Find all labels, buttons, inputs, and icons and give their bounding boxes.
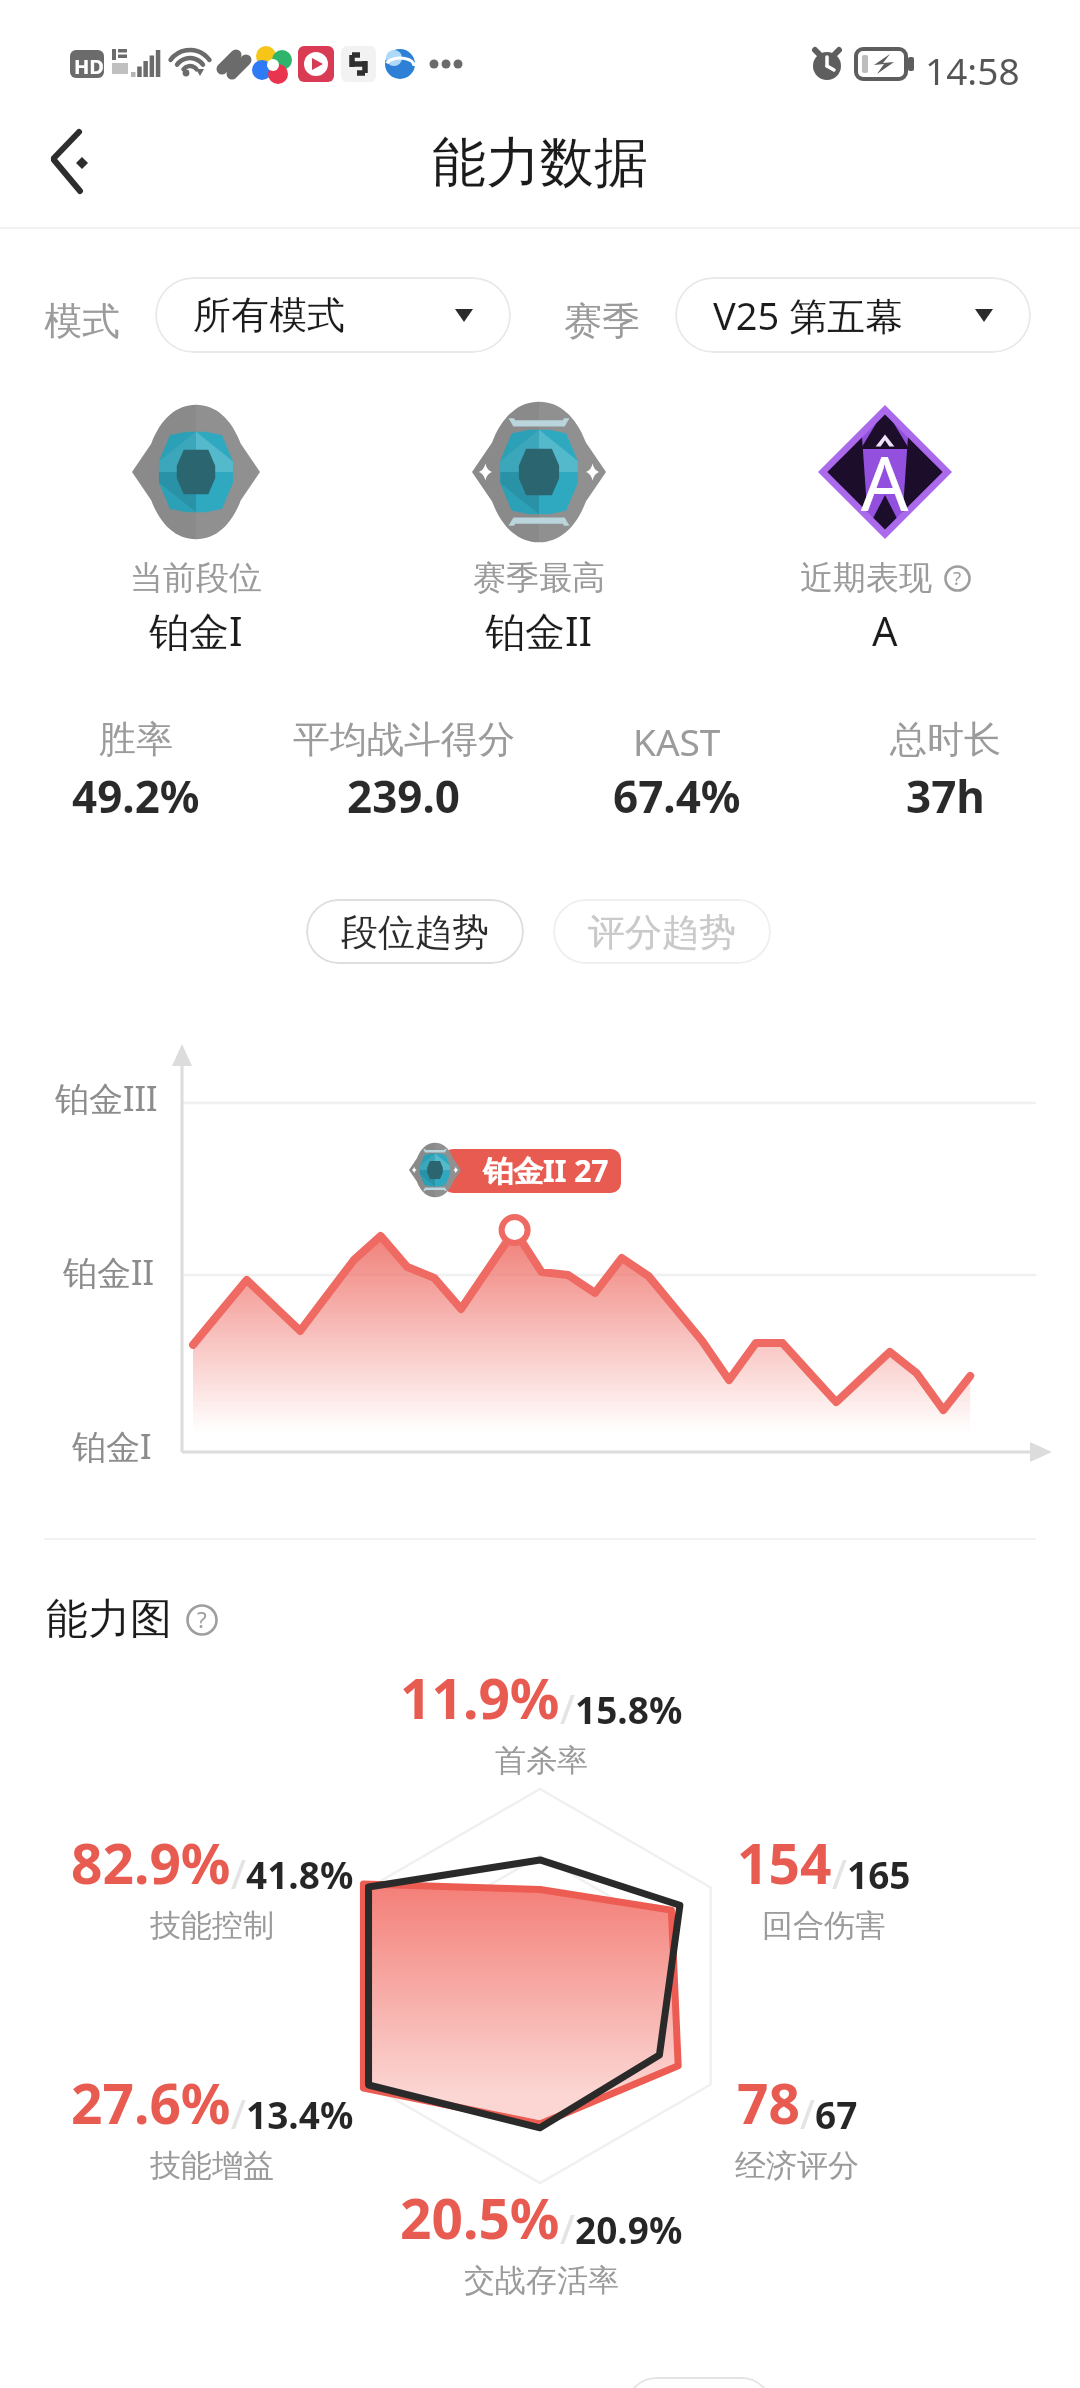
- staticText: 154: [737, 1825, 832, 1900]
- staticText: 铂金I: [72, 1423, 152, 1469]
- staticText: 165: [847, 1849, 911, 1899]
- staticText: 经济评分: [735, 2146, 859, 2185]
- staticText: /: [231, 1846, 246, 1900]
- staticText: A: [861, 432, 909, 533]
- staticText: 20.9%: [575, 2204, 683, 2254]
- staticText: 铂金II 27: [483, 1150, 609, 1191]
- staticText: 技能增益: [150, 2146, 274, 2185]
- staticText: 37h: [906, 766, 985, 826]
- staticText: 15.8%: [575, 1684, 683, 1734]
- button[interactable]: 段位趋势: [306, 899, 524, 964]
- staticText: 回合伤害: [762, 1906, 886, 1945]
- staticText: 平均战斗得分: [293, 716, 515, 763]
- staticText: 20.5%: [400, 2180, 560, 2255]
- staticText: V25 第五幕: [713, 289, 904, 341]
- staticText: 67.4%: [613, 766, 741, 826]
- staticText: 能力图: [46, 1593, 172, 1646]
- staticText: 铂金II: [63, 1249, 155, 1295]
- button[interactable]: Back: [20, 104, 130, 214]
- staticText: 模式: [44, 297, 120, 345]
- staticText: 总时长: [890, 716, 1001, 763]
- staticText: 铂金II: [485, 603, 593, 658]
- staticText: KAST: [633, 716, 721, 766]
- staticText: 当前段位: [130, 557, 262, 599]
- staticText: 11.9%: [400, 1660, 560, 1735]
- staticText: /: [800, 2086, 815, 2140]
- staticText: 赛季: [564, 297, 640, 345]
- staticText: A: [872, 603, 898, 657]
- staticText: ?: [197, 1604, 207, 1635]
- staticText: 铂金III: [55, 1075, 158, 1121]
- staticText: 近期表现: [800, 557, 932, 599]
- staticText: /: [560, 1681, 575, 1735]
- staticText: HD: [74, 53, 104, 80]
- staticText: 铂金I: [149, 603, 243, 658]
- staticText: 能力数据: [432, 129, 648, 197]
- staticText: 49.2%: [72, 766, 200, 826]
- staticText: /: [832, 1846, 847, 1900]
- staticText: /: [560, 2201, 575, 2255]
- staticText: 14:58: [925, 45, 1020, 95]
- staticText: 13.4%: [246, 2089, 354, 2139]
- staticText: 技能控制: [150, 1906, 274, 1945]
- staticText: /: [231, 2086, 246, 2140]
- staticText: 239.0: [347, 766, 461, 826]
- staticText: ?: [953, 565, 962, 591]
- staticText: 首杀率: [495, 1741, 588, 1780]
- button[interactable]: Help: [186, 1604, 218, 1636]
- button[interactable]: 所有模式: [155, 277, 511, 353]
- button[interactable]: [626, 2377, 772, 2388]
- staticText: 赛季最高: [473, 557, 605, 599]
- staticText: 67: [815, 2089, 858, 2139]
- staticText: 交战存活率: [464, 2261, 619, 2300]
- staticText: 78: [737, 2065, 800, 2140]
- button[interactable]: Help: [944, 565, 971, 592]
- staticText: 评分趋势: [588, 909, 736, 956]
- staticText: 41.8%: [246, 1849, 354, 1899]
- staticText: 所有模式: [193, 291, 345, 339]
- staticText: 82.9%: [71, 1825, 231, 1900]
- staticText: 胜率: [99, 716, 173, 763]
- button[interactable]: 评分趋势: [553, 899, 771, 964]
- staticText: 27.6%: [71, 2065, 231, 2140]
- staticText: 段位趋势: [341, 909, 489, 956]
- button[interactable]: V25 第五幕: [675, 277, 1031, 353]
